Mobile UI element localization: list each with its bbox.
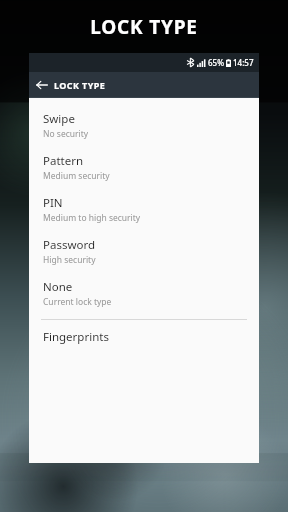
staticText: LOCK TYPE	[90, 14, 198, 40]
button[interactable]: Swipe	[29, 105, 259, 147]
staticText: PIN	[43, 195, 63, 211]
staticText: Current lock type	[43, 296, 112, 308]
button[interactable]: None	[29, 273, 259, 315]
button[interactable]: Pattern	[29, 147, 259, 189]
staticText: High security	[43, 254, 96, 266]
staticText: 65%	[208, 57, 224, 68]
button[interactable]: Password	[29, 231, 259, 273]
staticText: Swipe	[43, 111, 75, 127]
staticText: LOCK TYPE	[54, 79, 106, 91]
staticText: Medium to high security	[43, 212, 141, 224]
button[interactable]: Fingerprints	[29, 323, 259, 352]
button[interactable]: PIN	[29, 189, 259, 231]
staticText: Fingerprints	[43, 329, 109, 345]
button[interactable]: Back	[29, 72, 54, 97]
staticText: 14:57	[233, 57, 254, 68]
staticText: None	[43, 279, 73, 295]
staticText: Password	[43, 237, 96, 253]
staticText: No security	[43, 128, 89, 140]
staticText: Pattern	[43, 153, 84, 169]
staticText: Medium security	[43, 170, 110, 182]
